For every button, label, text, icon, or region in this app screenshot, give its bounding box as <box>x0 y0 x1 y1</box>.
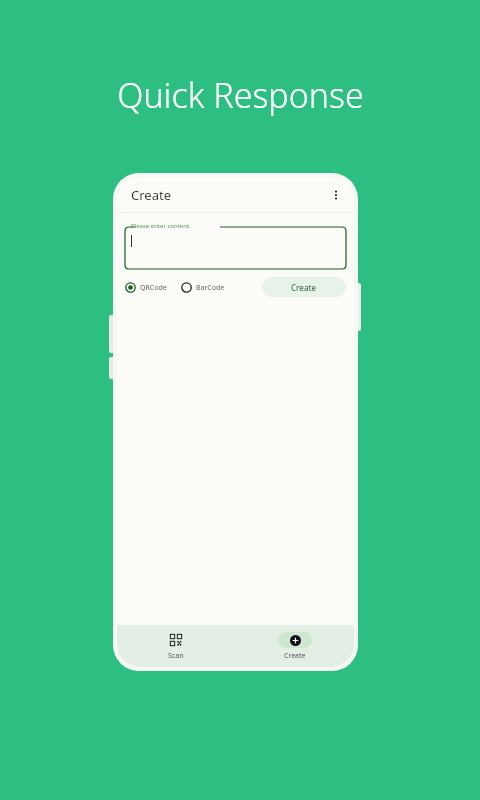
staticText: Create <box>284 651 306 661</box>
staticText: Create <box>291 282 317 293</box>
button[interactable]: Create <box>262 277 346 297</box>
other: Scan <box>159 632 193 648</box>
staticText: Create <box>131 186 171 204</box>
staticText: QRCode <box>140 283 167 293</box>
button[interactable]: BarCode <box>181 280 225 295</box>
button[interactable]: Create <box>235 625 354 667</box>
staticText: BarCode <box>196 283 225 293</box>
staticText: Please enter content. <box>131 222 191 230</box>
button[interactable]: Please enter content. <box>125 221 346 269</box>
button[interactable]: More options <box>324 183 348 207</box>
staticText: Quick Response <box>117 72 364 118</box>
button[interactable]: Scan <box>117 625 235 667</box>
other: Create <box>278 632 312 648</box>
staticText: Scan <box>168 651 184 661</box>
button[interactable]: QRCode <box>125 280 167 295</box>
